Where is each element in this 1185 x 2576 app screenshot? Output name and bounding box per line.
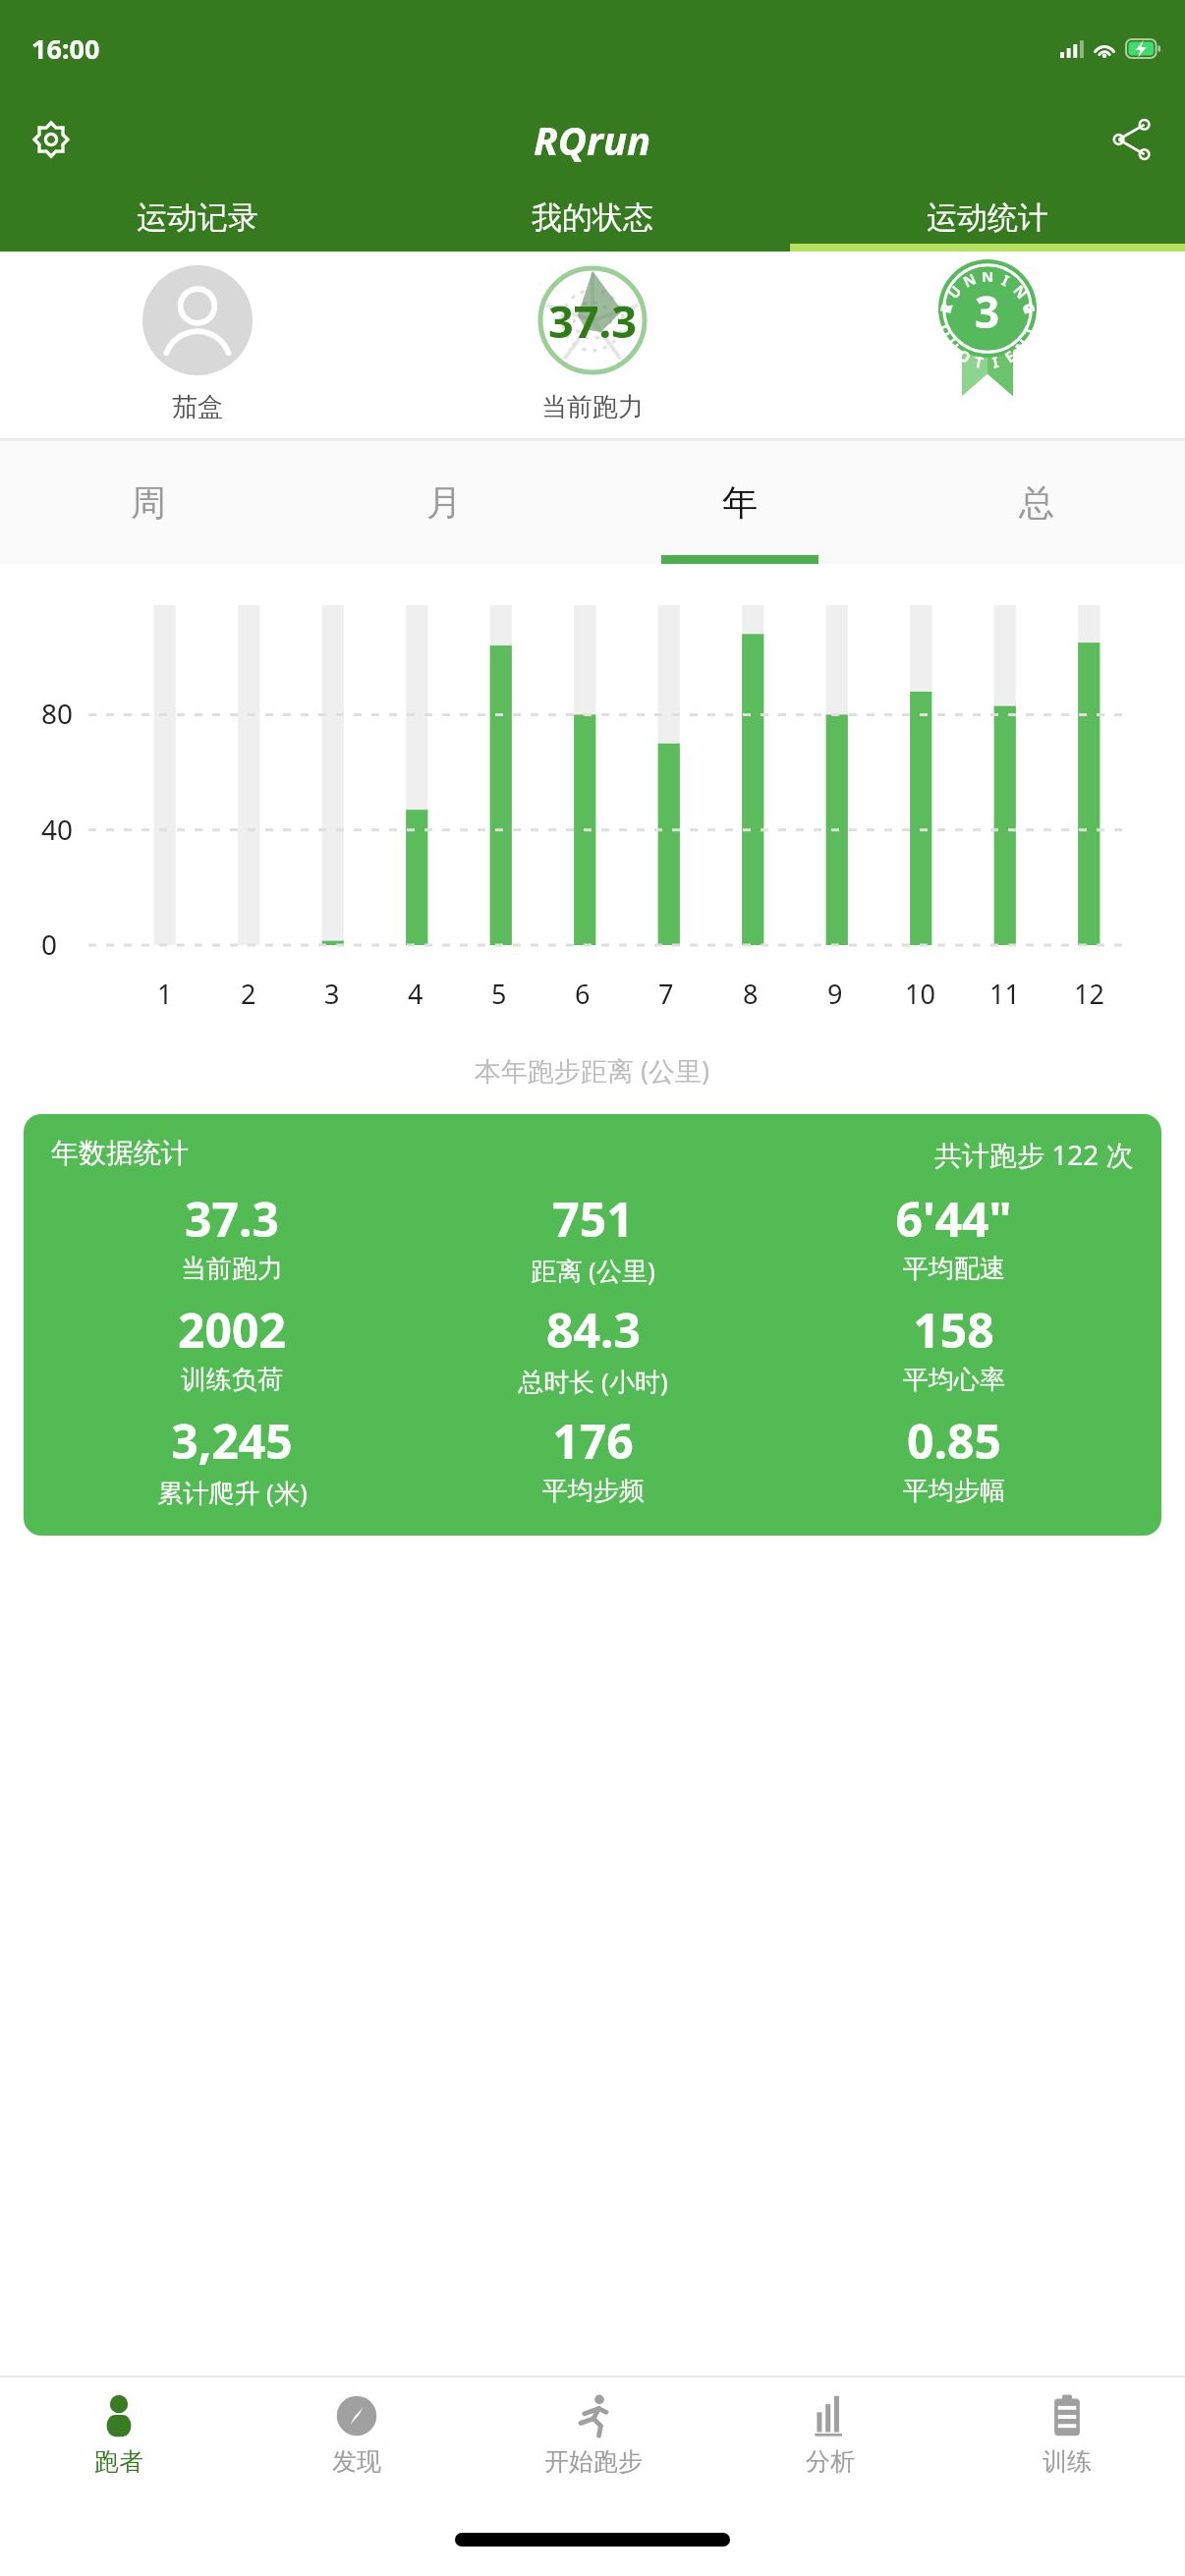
staticText: 总 <box>1019 480 1054 525</box>
staticText: RQrun <box>534 113 651 166</box>
staticText: 平均配速 <box>903 1253 1005 1285</box>
button[interactable]: 年 <box>592 441 888 564</box>
staticText: 平均步幅 <box>903 1475 1005 1507</box>
staticText: 5 <box>491 976 507 1012</box>
button[interactable]: 分析 <box>711 2378 948 2503</box>
button[interactable]: Settings <box>18 106 85 173</box>
staticText: T <box>1018 324 1040 338</box>
staticText: E <box>1001 346 1019 367</box>
staticText: 月 <box>426 480 462 525</box>
staticText: 84.3 <box>546 1298 641 1362</box>
staticText: 运动统计 <box>927 198 1048 237</box>
staticText: 80 <box>41 695 74 732</box>
staticText: 9 <box>827 976 843 1012</box>
button[interactable]: 开始跑步 <box>475 2378 711 2503</box>
staticText: 训练 <box>1043 2446 1092 2477</box>
staticText: 当前跑力 <box>541 391 644 423</box>
staticText: 0 <box>41 925 58 963</box>
button[interactable]: 运动记录 <box>0 183 395 252</box>
staticText: 共计跑步 122 次 <box>934 1136 1134 1173</box>
button[interactable]: 3 <box>790 252 1185 438</box>
button[interactable]: 年数据统计 <box>24 1114 1161 1536</box>
button[interactable]: 跑者 <box>0 2378 238 2503</box>
button[interactable]: 训练 <box>948 2378 1185 2503</box>
staticText: 分析 <box>806 2446 855 2477</box>
button[interactable]: 月 <box>296 441 592 564</box>
staticText: 平均步频 <box>542 1475 645 1507</box>
staticText: 6'44" <box>895 1187 1012 1251</box>
staticText: 0.85 <box>907 1409 1001 1473</box>
button[interactable]: 茄盒 <box>0 252 395 438</box>
staticText: 176 <box>552 1409 634 1473</box>
staticText: 12 <box>1074 976 1104 1012</box>
staticText: 周 <box>131 480 166 525</box>
staticText: 16:00 <box>31 30 100 67</box>
staticText: 2 <box>241 976 256 1012</box>
staticText: O <box>954 344 975 367</box>
staticText: 平均心率 <box>903 1364 1005 1396</box>
staticText: 我的状态 <box>532 198 653 237</box>
staticText: 40 <box>41 811 74 848</box>
staticText: 本年跑步距离 (公里) <box>475 1052 710 1089</box>
staticText: 1 <box>157 976 173 1012</box>
staticText: 10 <box>905 976 935 1012</box>
staticText: R <box>935 301 956 315</box>
staticText: 发现 <box>332 2446 381 2477</box>
staticText: 训练负荷 <box>181 1364 283 1396</box>
button[interactable]: 37.3 <box>395 252 790 438</box>
staticText: 累计爬升 (米) <box>157 1475 308 1510</box>
staticText: N <box>960 268 980 291</box>
staticText: 7 <box>658 976 674 1012</box>
staticText: 6 <box>575 976 591 1012</box>
button[interactable]: 周 <box>0 441 296 564</box>
staticText: 11 <box>989 976 1020 1012</box>
staticText: 4 <box>408 976 423 1012</box>
staticText: 8 <box>743 976 759 1012</box>
staticText: 158 <box>913 1298 994 1362</box>
button[interactable]: 总 <box>888 441 1185 564</box>
staticText: 2002 <box>178 1298 286 1362</box>
staticText: Q <box>935 322 957 339</box>
staticText: 3 <box>975 282 1000 341</box>
staticText: 跑者 <box>94 2446 143 2477</box>
staticText: 37.3 <box>185 1187 279 1251</box>
staticText: 距离 (公里) <box>531 1253 655 1288</box>
staticText: 37.3 <box>548 291 637 351</box>
staticText: 茄盒 <box>172 391 223 423</box>
staticText: 年 <box>722 480 758 525</box>
staticText: 年数据统计 <box>51 1136 189 1170</box>
staticText: G <box>1018 301 1040 316</box>
button[interactable]: 发现 <box>238 2378 475 2503</box>
staticText: N <box>1009 281 1033 303</box>
staticText: U <box>941 334 964 356</box>
staticText: 总时长 (小时) <box>518 1364 668 1399</box>
staticText: 当前跑力 <box>181 1253 283 1285</box>
staticText: 开始跑步 <box>544 2446 643 2477</box>
staticText: 3 <box>324 976 340 1012</box>
button[interactable]: Share <box>1099 106 1165 173</box>
staticText: 3,245 <box>171 1409 293 1473</box>
staticText: N <box>982 266 994 286</box>
staticText: 运动记录 <box>137 198 258 237</box>
button[interactable]: 我的状态 <box>395 183 790 252</box>
staticText: N <box>1010 334 1034 356</box>
staticText: 751 <box>552 1187 634 1251</box>
staticText: I <box>991 352 1000 372</box>
button[interactable]: 运动统计 <box>790 183 1185 252</box>
staticText: T <box>973 351 985 372</box>
staticText: I <box>999 270 1013 290</box>
staticText: U <box>943 281 966 302</box>
